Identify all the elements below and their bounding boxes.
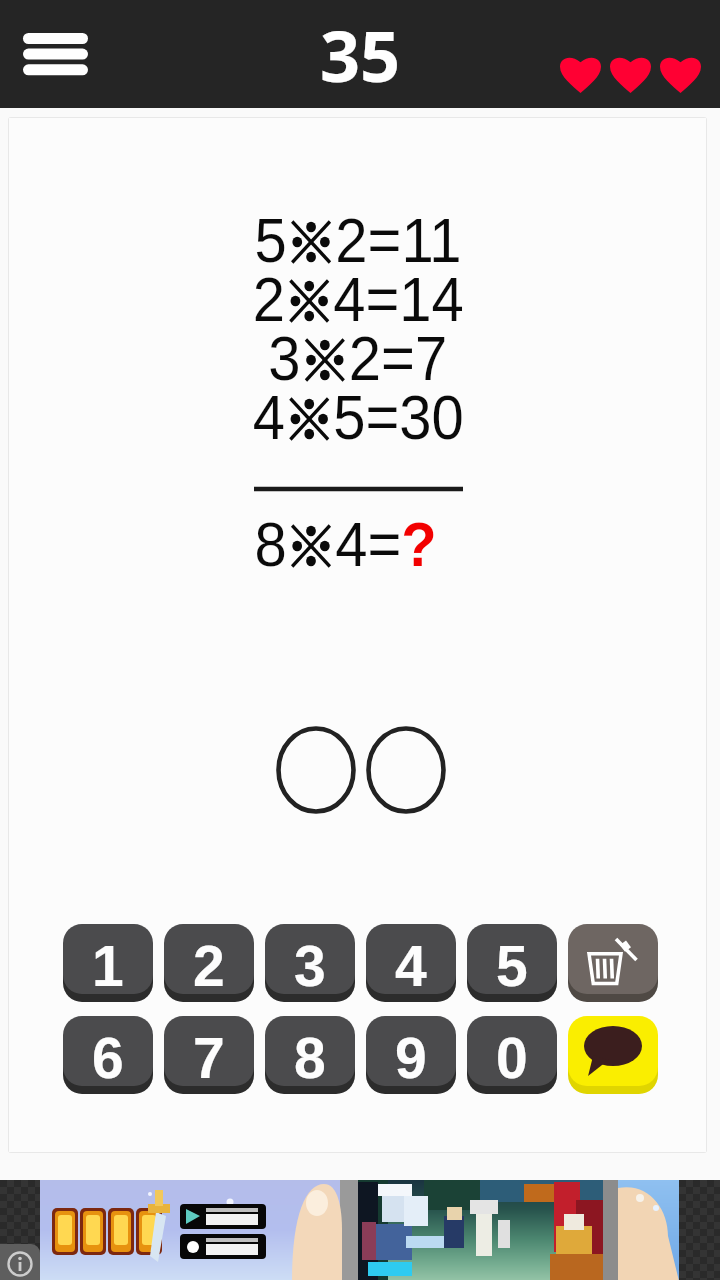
staticText: 3 — [268, 323, 301, 393]
staticText: 0 — [496, 1026, 528, 1086]
button[interactable]: Advertisement — [0, 1180, 720, 1280]
staticText: 35 — [320, 7, 401, 102]
staticText: 5 — [496, 934, 528, 994]
staticText: 8 — [294, 1026, 326, 1086]
button[interactable]: Answer slot — [271, 725, 361, 815]
staticText: 3 — [294, 934, 326, 994]
button[interactable]: Delete — [568, 924, 658, 1002]
button[interactable]: 0 — [467, 1016, 557, 1094]
staticText: 4 — [395, 934, 427, 994]
staticText: 2 — [252, 264, 285, 334]
staticText: 2=7 — [349, 323, 447, 393]
button[interactable]: 3 — [265, 924, 355, 1002]
staticText: 1 — [92, 934, 124, 994]
staticText: 8 — [254, 509, 287, 579]
button[interactable]: 7 — [164, 1016, 254, 1094]
button[interactable]: Chat — [568, 1016, 658, 1094]
staticText: 9 — [395, 1026, 427, 1086]
staticText: 6 — [92, 1026, 124, 1086]
staticText: 5=30 — [333, 382, 464, 452]
staticText: 2=11 — [335, 205, 462, 275]
button[interactable]: Ad info — [0, 1244, 40, 1280]
button[interactable]: Answer slot — [361, 725, 451, 815]
staticText: 4 — [252, 382, 285, 452]
button[interactable]: 9 — [366, 1016, 456, 1094]
staticText: 5 — [254, 205, 287, 275]
staticText: 4=14 — [333, 264, 464, 334]
button[interactable]: 5 — [467, 924, 557, 1002]
button[interactable]: 8 — [265, 1016, 355, 1094]
staticText: 7 — [193, 1026, 225, 1086]
staticText: 2 — [193, 934, 225, 994]
button[interactable]: 2 — [164, 924, 254, 1002]
button[interactable]: 6 — [63, 1016, 153, 1094]
button[interactable]: 4 — [366, 924, 456, 1002]
button[interactable]: Menu — [8, 0, 103, 108]
button[interactable]: 1 — [63, 924, 153, 1002]
staticText: 4=? — [335, 509, 437, 579]
